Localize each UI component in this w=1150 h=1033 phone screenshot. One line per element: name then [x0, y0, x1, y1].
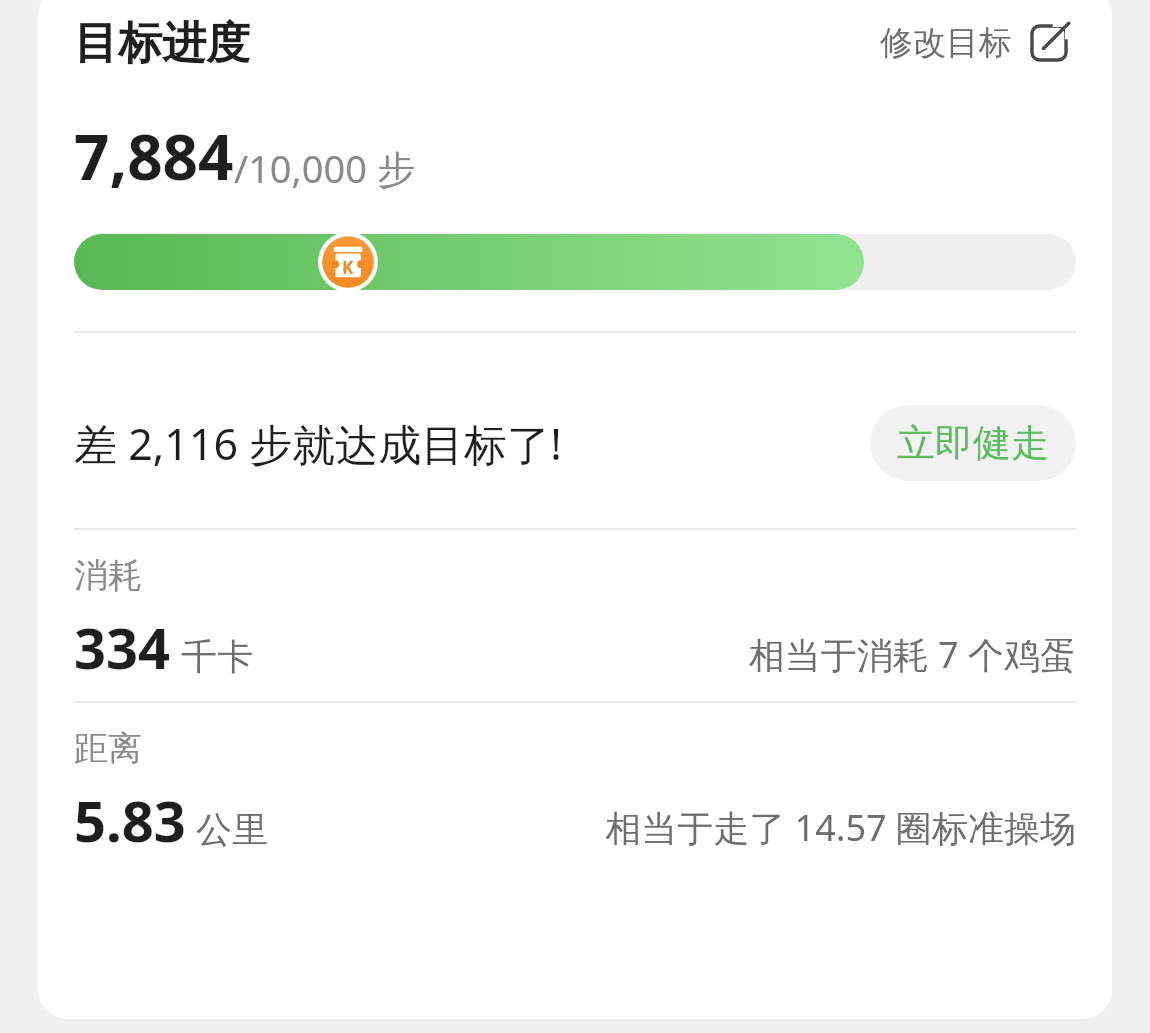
- button[interactable]: 修改目标: [876, 16, 1076, 70]
- staticText: 消耗: [74, 554, 142, 597]
- staticText: 千卡: [181, 634, 253, 679]
- staticText: 距离: [74, 727, 142, 770]
- staticText: 相当于走了 14.57 圈标准操场: [605, 803, 1076, 852]
- staticText: /10,000 步: [234, 142, 415, 194]
- button[interactable]: 立即健走: [870, 405, 1076, 481]
- staticText: 5.83: [74, 782, 186, 858]
- button[interactable]: Coupon reward: [74, 232, 1076, 292]
- staticText: 修改目标: [880, 22, 1012, 64]
- staticText: 7,884: [74, 114, 234, 198]
- other: 修改目标: [1026, 20, 1072, 66]
- other: Coupon reward: [317, 232, 379, 292]
- staticText: 公里: [196, 807, 268, 852]
- staticText: 差 2,116 步就达成目标了!: [74, 414, 562, 473]
- staticText: 目标进度: [74, 16, 250, 71]
- staticText: K: [342, 256, 354, 279]
- staticText: 334: [74, 609, 171, 685]
- staticText: 立即健走: [897, 419, 1049, 467]
- staticText: 相当于消耗 7 个鸡蛋: [748, 630, 1076, 679]
